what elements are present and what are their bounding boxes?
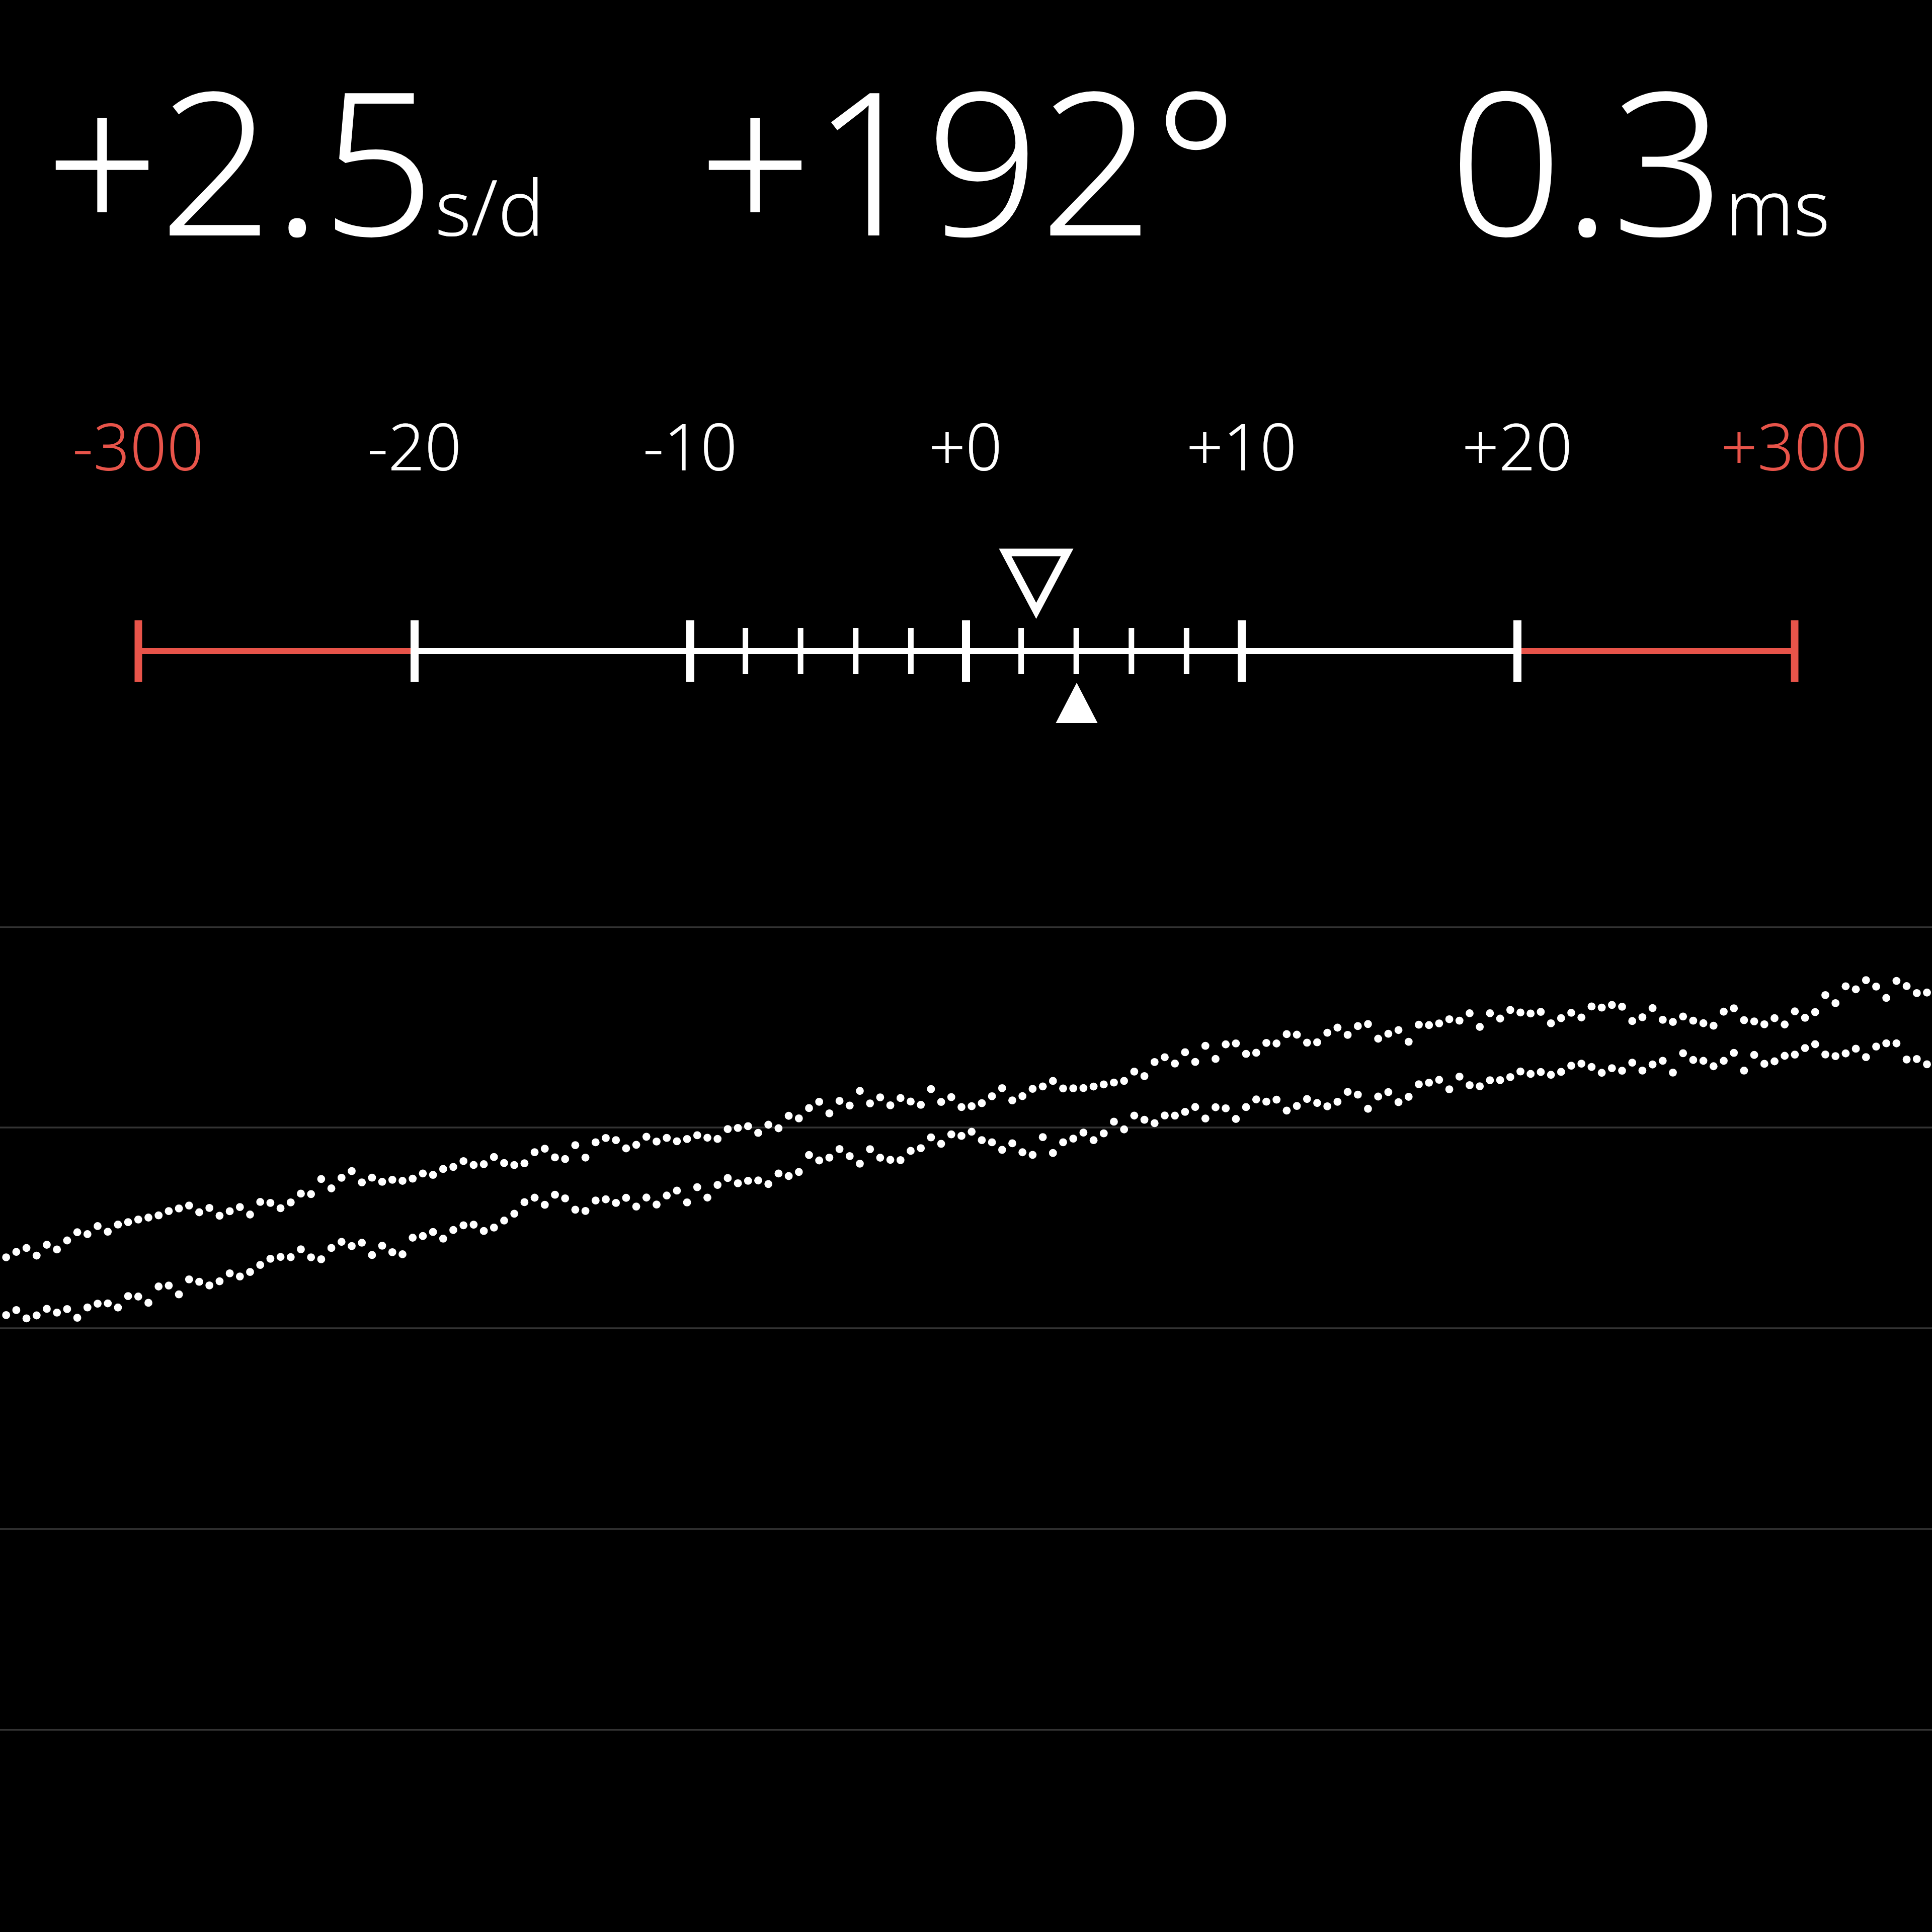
button[interactable]: +192° [698, 23, 1239, 294]
staticText: -20 [367, 401, 462, 489]
staticText: -10 [643, 401, 738, 489]
button[interactable]: +2.5s/d [45, 23, 544, 294]
staticText: +0 [929, 401, 1003, 489]
staticText: -300 [72, 401, 204, 489]
staticText: +10 [1186, 401, 1297, 489]
button[interactable]: Rate trace graph [0, 0, 1932, 1932]
button[interactable]: 0.3ms [1449, 23, 1830, 294]
staticText: +300 [1721, 401, 1868, 489]
button[interactable]: Rate scale [0, 493, 1932, 745]
staticText: +20 [1462, 401, 1573, 489]
